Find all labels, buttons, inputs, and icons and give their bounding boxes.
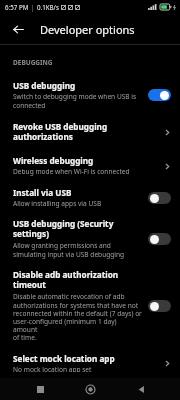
staticText: Switch to debugging mode when USB is con… [13,92,137,110]
button[interactable]: Toggle off [148,300,171,312]
button[interactable]: Back [130,378,152,400]
staticText: Disable automatic revocation of adb auth… [13,292,142,342]
button[interactable]: Back [8,19,28,39]
button[interactable]: Revoke USB debugging authorizations [0,115,180,149]
staticText: Select mock location app [13,353,115,364]
button[interactable]: Install via USB [0,182,180,213]
button[interactable]: Home [79,378,101,400]
staticText: Disable adb authorization timeout [13,269,119,291]
button[interactable]: Toggle off [148,192,171,204]
staticText: 6:57 PM [5,3,29,11]
other: Open [161,126,173,138]
staticText: No mock location app set [13,365,92,372]
button[interactable]: Wireless debugging [0,149,180,182]
staticText: Allow installing apps via USB [13,199,102,208]
staticText: Install via USB [13,187,72,198]
staticText: DEBUGGING [13,58,53,67]
staticText: 0.1KB/s [37,3,59,11]
button[interactable]: USB debugging [0,75,180,115]
staticText: | [31,3,35,11]
staticText: Developer options [40,22,135,37]
staticText: Wireless debugging [13,155,94,166]
button[interactable]: Toggle on [148,89,171,101]
button[interactable]: Toggle off [148,233,171,245]
other: Open [161,357,173,369]
button[interactable]: USB debugging (Security settings) [0,213,180,264]
staticText: USB debugging [13,80,76,91]
staticText: Debug mode when Wi-Fi is connected [13,167,130,176]
staticText: Allow granting permissions and simulatin… [13,241,125,259]
staticText: Revoke USB debugging authorizations [13,121,156,143]
other: Open [161,160,173,172]
button[interactable]: Recents [29,378,51,400]
button[interactable]: Disable adb authorization timeout [0,264,180,347]
staticText: USB debugging (Security settings) [13,218,114,240]
button[interactable]: Select mock location app [0,347,180,378]
